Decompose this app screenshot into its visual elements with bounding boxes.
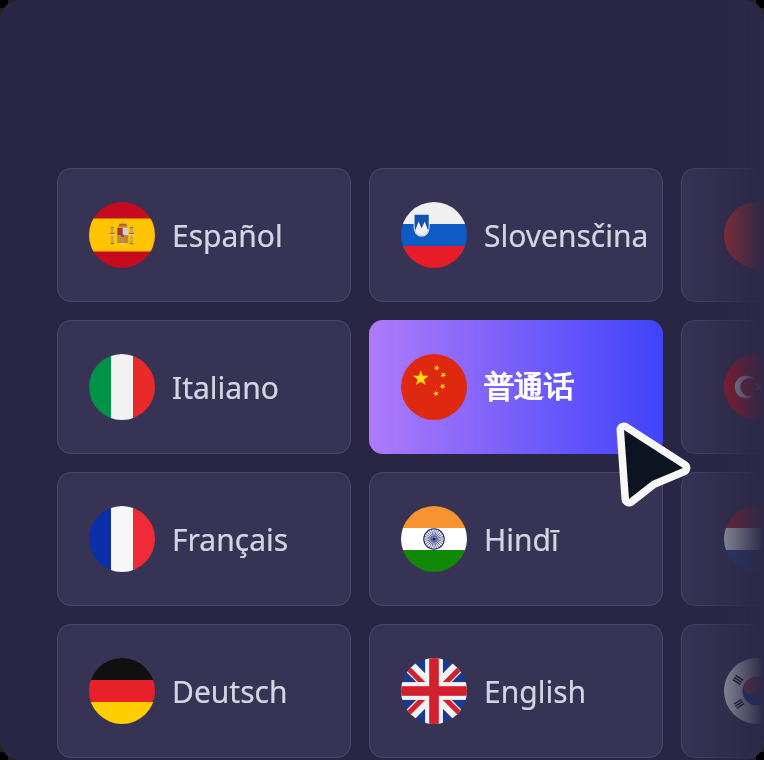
button[interactable]: Deutsch bbox=[57, 624, 351, 758]
staticText: Hindī bbox=[484, 519, 559, 560]
staticText: English bbox=[484, 671, 587, 712]
staticText: Deutsch bbox=[172, 671, 288, 712]
staticText: 普通话 bbox=[484, 368, 574, 406]
button[interactable]: Hindī bbox=[369, 472, 663, 606]
button[interactable]: Slovensčina bbox=[369, 168, 663, 302]
staticText: Italiano bbox=[172, 367, 279, 408]
staticText: 普通话 bbox=[484, 368, 574, 406]
button[interactable]: Tiếng Việt bbox=[681, 168, 764, 302]
staticText: Français bbox=[172, 519, 289, 560]
button[interactable]: Français bbox=[57, 472, 351, 606]
button[interactable]: English bbox=[369, 624, 663, 758]
button[interactable]: Türkçe bbox=[681, 320, 764, 454]
button[interactable]: Italiano bbox=[57, 320, 351, 454]
button[interactable]: 普通话 bbox=[369, 320, 663, 454]
staticText: Slovensčina bbox=[484, 215, 649, 256]
button[interactable]: Nederlands bbox=[681, 472, 764, 606]
staticText: Español bbox=[172, 215, 283, 256]
button[interactable]: Español bbox=[57, 168, 351, 302]
button[interactable]: 한국어 bbox=[681, 624, 764, 758]
